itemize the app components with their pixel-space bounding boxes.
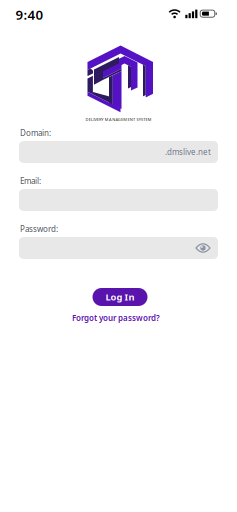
staticText: 9:40 [15,6,43,23]
button[interactable]: Forgot your password? [72,313,160,323]
staticText: Log In [105,291,134,303]
button[interactable] [19,237,218,259]
staticText: Email: [20,176,41,186]
button[interactable]: Log In [92,288,147,306]
button[interactable]: .dmslive.net [19,141,218,163]
staticText: Password: [20,224,58,234]
staticText: .dmslive.net [165,147,211,157]
staticText: Forgot your password? [72,313,160,323]
staticText: DELIVERY MANAGEMENT SYSTEM [85,117,152,122]
button[interactable]: Show password [195,242,211,254]
staticText: Domain: [20,128,51,138]
